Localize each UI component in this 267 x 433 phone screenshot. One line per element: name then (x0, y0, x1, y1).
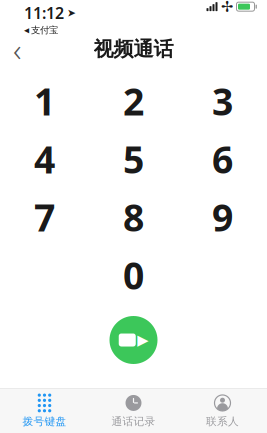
staticText: 5 (123, 134, 144, 184)
button[interactable]: 2 (89, 72, 178, 130)
button[interactable]: 4 (0, 130, 89, 188)
button[interactable]: 通话记录 (89, 389, 178, 433)
staticText: 3 (212, 76, 233, 126)
staticText: 1 (34, 76, 55, 126)
button[interactable]: Start video call (103, 310, 163, 370)
button[interactable]: 联系人 (178, 389, 267, 433)
button[interactable]: 5 (89, 130, 178, 188)
staticText: 拨号键盘 (22, 415, 66, 428)
staticText: 联系人 (206, 415, 239, 428)
button[interactable]: 3 (178, 72, 267, 130)
staticText: 6 (212, 134, 233, 184)
button[interactable]: 0 (89, 246, 178, 304)
button[interactable]: 拨号键盘 (0, 389, 89, 433)
staticText: ‹ (13, 28, 21, 70)
button[interactable]: 1 (0, 72, 89, 130)
staticText: ◀ (24, 26, 29, 34)
button[interactable]: 8 (89, 188, 178, 246)
staticText: 8 (123, 192, 144, 242)
staticText: ✢ (221, 0, 233, 15)
staticText: 0 (123, 250, 144, 300)
staticText: 支付宝 (31, 24, 58, 36)
staticText: 11:12 (24, 2, 64, 23)
staticText: 2 (123, 76, 144, 126)
staticText: 9 (212, 192, 233, 242)
button[interactable]: 6 (178, 130, 267, 188)
staticText: 视频通话 (93, 37, 173, 61)
staticText: ▶ (137, 332, 148, 348)
staticText: ➤ (67, 7, 76, 19)
staticText: 通话记录 (111, 415, 155, 428)
staticText: 4 (34, 134, 55, 184)
button[interactable]: 7 (0, 188, 89, 246)
button[interactable]: 9 (178, 188, 267, 246)
staticText: 7 (34, 192, 55, 242)
button[interactable]: Back (0, 34, 34, 64)
